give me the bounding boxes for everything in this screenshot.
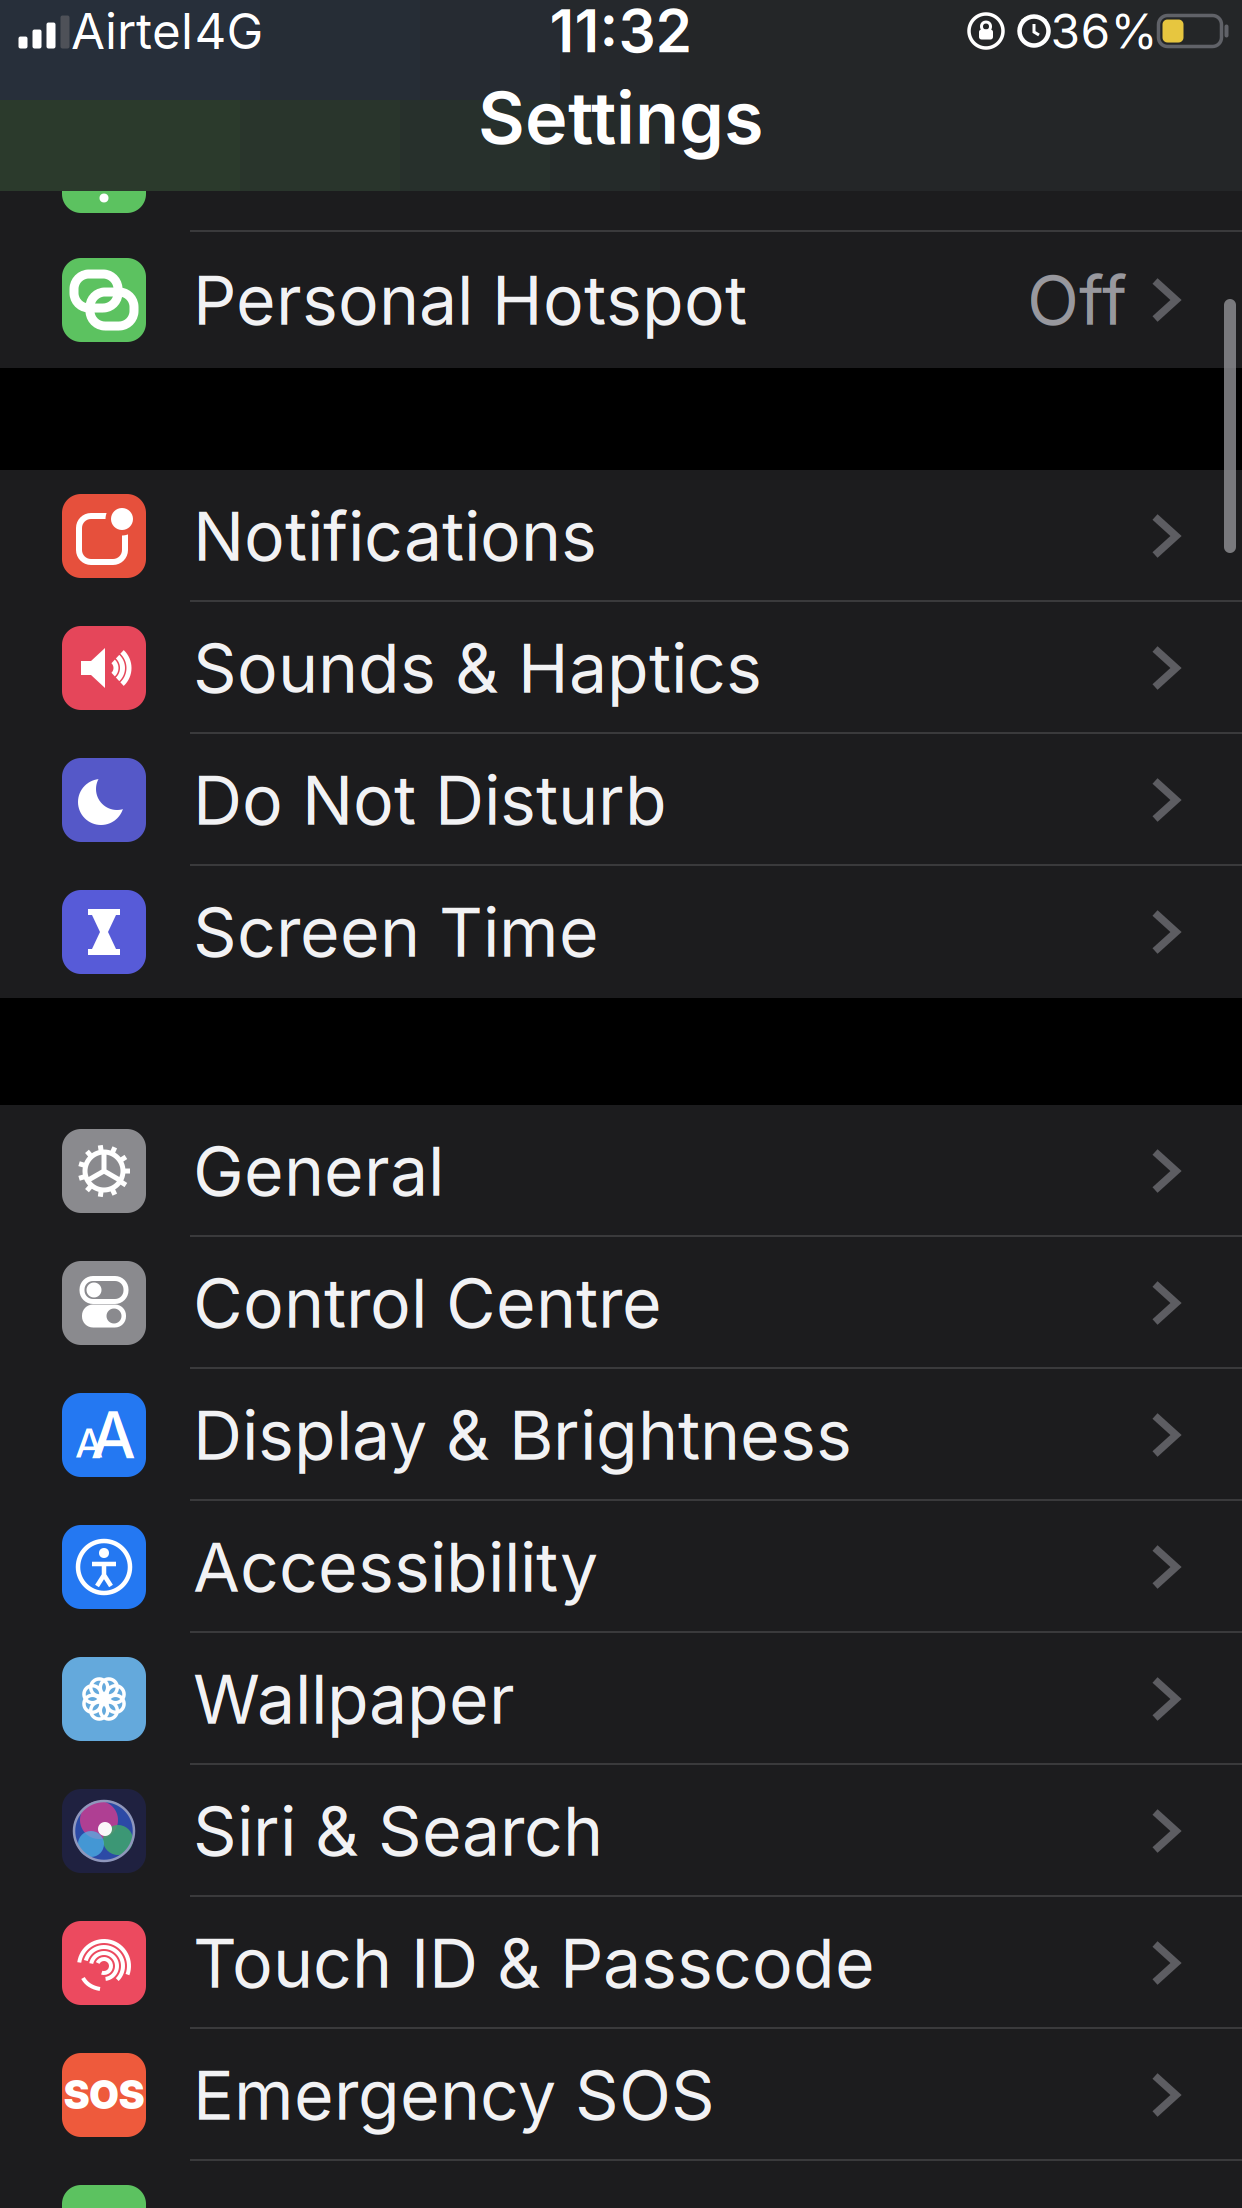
button[interactable]: SOS xyxy=(0,2029,1242,2161)
staticText: Display & Brightness xyxy=(193,1395,852,1475)
staticText: SOS xyxy=(63,2072,144,2118)
button[interactable]: Sounds & Haptics xyxy=(0,602,1242,734)
button[interactable]: Screen Time xyxy=(0,866,1242,998)
staticText: Personal Hotspot xyxy=(193,260,747,340)
button[interactable]: Battery xyxy=(0,2161,1242,2208)
staticText: Wallpaper xyxy=(193,1659,515,1739)
button[interactable]: Notifications xyxy=(0,470,1242,602)
button[interactable]: Control Centre xyxy=(0,1237,1242,1369)
staticText: A xyxy=(90,1397,135,1473)
button[interactable]: Accessibility xyxy=(0,1501,1242,1633)
staticText: Control Centre xyxy=(193,1263,662,1343)
staticText: Do Not Disturb xyxy=(193,760,667,840)
button[interactable]: Wallpaper xyxy=(0,1633,1242,1765)
staticText: Emergency SOS xyxy=(193,2055,715,2135)
button[interactable]: Personal Hotspot xyxy=(0,232,1242,368)
staticText: Screen Time xyxy=(193,892,599,972)
staticText: Notifications xyxy=(193,496,597,576)
button[interactable]: Siri & Search xyxy=(0,1765,1242,1897)
staticText: Airtel xyxy=(71,2,193,60)
staticText: Accessibility xyxy=(193,1527,598,1607)
staticText: Siri & Search xyxy=(193,1791,603,1871)
button[interactable]: A xyxy=(0,1369,1242,1501)
button[interactable]: General xyxy=(0,1105,1242,1237)
button[interactable]: Mobile Data xyxy=(0,191,1242,232)
staticText: General xyxy=(193,1131,444,1211)
staticText: Settings xyxy=(478,75,764,160)
button[interactable]: Do Not Disturb xyxy=(0,734,1242,866)
staticText: Off xyxy=(1027,260,1127,340)
staticText: Touch ID & Passcode xyxy=(193,1923,875,2003)
staticText: 4G xyxy=(194,2,263,60)
staticText: Sounds & Haptics xyxy=(193,628,762,708)
staticText: 36% xyxy=(1050,3,1157,59)
button[interactable]: Touch ID & Passcode xyxy=(0,1897,1242,2029)
staticText: A xyxy=(75,1419,102,1467)
staticText: 11:32 xyxy=(549,0,692,66)
